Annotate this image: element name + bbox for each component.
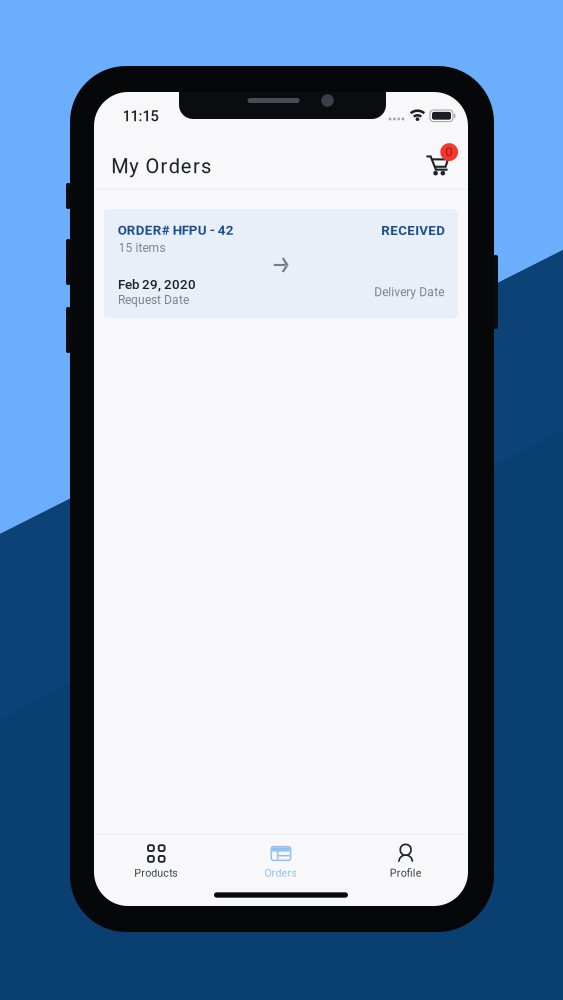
staticText: Orders bbox=[264, 867, 297, 879]
staticText: Feb 29, 2020 bbox=[118, 277, 196, 292]
button[interactable]: Profile bbox=[343, 837, 468, 883]
staticText: 0 bbox=[445, 144, 453, 159]
staticText: My Orders bbox=[111, 155, 211, 178]
button[interactable]: ORDER# HFPU - 42 bbox=[104, 209, 458, 318]
staticText: ORDER# HFPU - 42 bbox=[118, 222, 234, 238]
staticText: Delivery Date bbox=[374, 285, 444, 299]
staticText: 15 items bbox=[118, 241, 165, 255]
staticText: Products bbox=[134, 867, 178, 879]
staticText: 11:15 bbox=[123, 108, 159, 125]
button[interactable]: Cart bbox=[410, 139, 464, 191]
button[interactable]: Orders bbox=[219, 837, 343, 883]
button[interactable]: Products bbox=[94, 837, 219, 883]
staticText: Request Date bbox=[118, 293, 189, 307]
staticText: RECEIVED bbox=[381, 223, 445, 238]
staticText: Profile bbox=[390, 867, 422, 879]
